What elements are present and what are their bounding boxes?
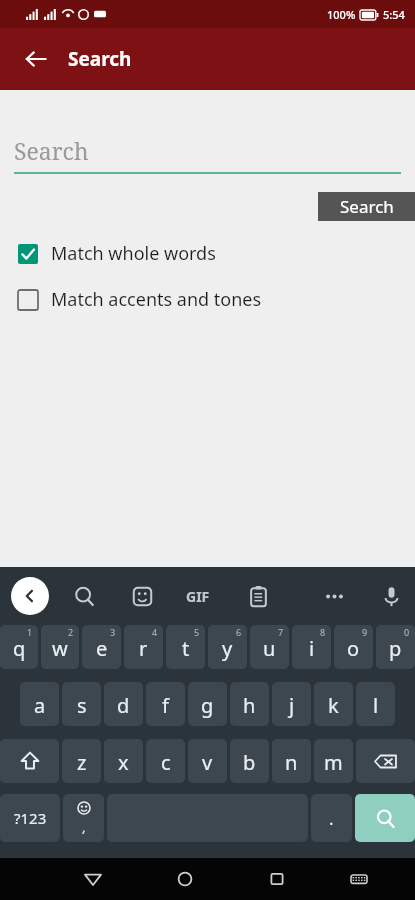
button[interactable]: Stickers xyxy=(120,567,164,625)
staticText: u xyxy=(263,635,276,662)
staticText: c xyxy=(161,749,171,776)
staticText: n xyxy=(285,749,298,776)
staticText: . xyxy=(329,807,334,830)
button[interactable]: Match accents and tones xyxy=(18,287,415,312)
button[interactable]: Close keyboard toolbar xyxy=(11,577,49,615)
staticText: GIF xyxy=(186,587,210,606)
staticText: j xyxy=(289,692,295,719)
button[interactable]: l xyxy=(356,682,395,726)
staticText: o xyxy=(347,635,360,662)
staticText: 5 xyxy=(194,626,200,638)
button[interactable]: Search xyxy=(14,135,401,174)
staticText: x xyxy=(118,749,129,776)
button[interactable]: b xyxy=(230,739,269,783)
button[interactable]: h xyxy=(230,682,269,726)
staticText: , xyxy=(82,818,86,836)
staticText: 1 xyxy=(27,626,33,638)
button[interactable]: k xyxy=(314,682,353,726)
button[interactable]: e xyxy=(82,625,121,669)
staticText: 7 xyxy=(278,626,284,638)
staticText: m xyxy=(324,749,343,776)
staticText: 3 xyxy=(110,626,116,638)
button[interactable]: w xyxy=(41,625,79,669)
staticText: h xyxy=(243,692,256,719)
staticText: l xyxy=(373,692,379,719)
staticText: Search xyxy=(14,135,89,166)
button[interactable]: f xyxy=(146,682,185,726)
staticText: 5:54 xyxy=(383,7,405,22)
button[interactable]: v xyxy=(188,739,227,783)
button[interactable]: Match whole words xyxy=(18,241,415,266)
staticText: Search xyxy=(68,46,132,72)
staticText: i xyxy=(309,635,315,662)
button[interactable]: t xyxy=(166,625,205,669)
button[interactable]: o xyxy=(334,625,373,669)
button[interactable]: a xyxy=(20,682,59,726)
button[interactable]: GIF xyxy=(176,567,220,625)
staticText: z xyxy=(77,749,87,776)
staticText: 4 xyxy=(152,626,158,638)
staticText: 100% xyxy=(327,7,356,22)
staticText: 0 xyxy=(404,626,410,638)
button[interactable]: q xyxy=(0,625,38,669)
button[interactable]: Clipboard xyxy=(236,567,280,625)
staticText: 2 xyxy=(68,626,74,638)
staticText: t xyxy=(182,635,190,662)
staticText: p xyxy=(389,635,402,662)
button[interactable]: d xyxy=(104,682,143,726)
staticText: Match accents and tones xyxy=(51,287,262,312)
button[interactable]: Backspace xyxy=(356,739,415,783)
button[interactable]: m xyxy=(314,739,353,783)
staticText: e xyxy=(96,635,108,662)
button[interactable]: u xyxy=(250,625,289,669)
staticText: s xyxy=(77,692,87,719)
staticText: 8 xyxy=(320,626,326,638)
button[interactable]: Home xyxy=(164,858,206,900)
button[interactable]: Back xyxy=(72,858,114,900)
button[interactable]: ?123 xyxy=(0,794,60,842)
button[interactable]: Recent apps xyxy=(256,858,298,900)
button[interactable]: Emoji and comma xyxy=(63,794,104,842)
button[interactable]: g xyxy=(188,682,227,726)
button[interactable]: i xyxy=(292,625,331,669)
staticText: b xyxy=(243,749,256,776)
button[interactable]: Search xyxy=(62,567,106,625)
staticText: y xyxy=(222,635,233,662)
button[interactable]: More options xyxy=(312,567,356,625)
button[interactable]: y xyxy=(208,625,247,669)
button[interactable]: z xyxy=(62,739,101,783)
button[interactable]: Back xyxy=(14,37,58,81)
button[interactable]: Switch keyboard xyxy=(338,858,380,900)
staticText: 6 xyxy=(236,626,242,638)
button[interactable]: x xyxy=(104,739,143,783)
button[interactable]: n xyxy=(272,739,311,783)
staticText: f xyxy=(162,692,169,719)
staticText: k xyxy=(328,692,339,719)
button[interactable]: j xyxy=(272,682,311,726)
staticText: w xyxy=(52,635,68,662)
staticText: r xyxy=(139,635,148,662)
button[interactable]: p xyxy=(376,625,415,669)
button[interactable]: r xyxy=(124,625,163,669)
staticText: ?123 xyxy=(14,808,47,828)
staticText: 9 xyxy=(362,626,368,638)
button[interactable]: s xyxy=(62,682,101,726)
staticText: q xyxy=(13,635,26,662)
staticText: g xyxy=(201,692,214,719)
button[interactable]: Voice input xyxy=(369,567,413,625)
button[interactable]: Shift xyxy=(0,739,59,783)
staticText: Match whole words xyxy=(51,241,216,266)
button[interactable]: . xyxy=(311,794,352,842)
staticText: a xyxy=(34,692,46,719)
button[interactable]: Search xyxy=(355,794,415,842)
staticText: d xyxy=(117,692,130,719)
staticText: v xyxy=(202,749,213,776)
staticText: Search xyxy=(340,195,394,218)
button[interactable]: c xyxy=(146,739,185,783)
button[interactable]: Search xyxy=(318,192,415,221)
